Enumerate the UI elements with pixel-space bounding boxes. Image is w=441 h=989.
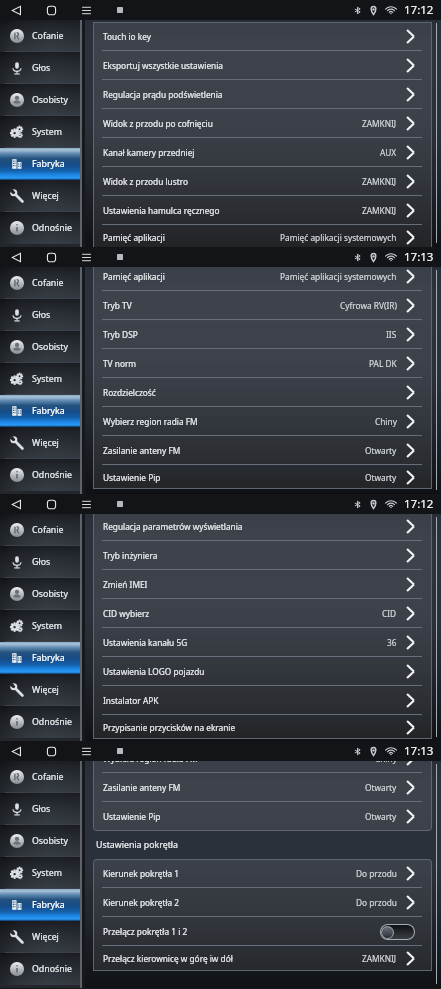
- button[interactable]: Przełącz pokrętła 1 i 2: [93, 917, 432, 946]
- button[interactable]: Back: [4, 494, 28, 514]
- button[interactable]: Pamięć aplikacji: [93, 225, 432, 247]
- button[interactable]: Osobisty: [0, 84, 82, 116]
- button[interactable]: Więcej: [0, 674, 82, 706]
- button[interactable]: Ustawienie Pip: [93, 802, 432, 831]
- button[interactable]: Osobisty: [0, 825, 82, 857]
- staticText: Do przodu: [356, 897, 397, 908]
- staticText: AUX: [380, 147, 397, 158]
- button[interactable]: Cofanie: [0, 514, 82, 546]
- button[interactable]: Zmień IMEI: [93, 570, 432, 599]
- button[interactable]: Rozdzielczość: [93, 378, 432, 407]
- button[interactable]: Widok z przodu po cofnięciu: [93, 109, 432, 138]
- button[interactable]: Więcej: [0, 180, 82, 212]
- button[interactable]: Fabryka: [0, 642, 82, 674]
- staticText: Osobisty: [32, 835, 68, 847]
- button[interactable]: Odnośnie: [0, 706, 82, 738]
- staticText: Wybierz region radia FM: [103, 761, 198, 764]
- button[interactable]: TV norm: [93, 349, 432, 378]
- button[interactable]: Cofanie: [0, 267, 82, 299]
- button[interactable]: Home: [39, 0, 63, 20]
- button[interactable]: Home: [39, 247, 63, 267]
- button[interactable]: Menu: [74, 247, 98, 267]
- staticText: CID wybierz: [103, 608, 150, 619]
- staticText: CID: [382, 608, 397, 619]
- button[interactable]: Głos: [0, 546, 82, 578]
- button[interactable]: Regulacja parametrów wyświetlania: [93, 514, 432, 541]
- button[interactable]: Osobisty: [0, 578, 82, 610]
- staticText: Cyfrowa RV(IR): [340, 300, 397, 311]
- button[interactable]: Więcej: [0, 921, 82, 953]
- button[interactable]: System: [0, 610, 82, 642]
- button[interactable]: Widok z przodu lustro: [93, 167, 432, 196]
- button[interactable]: Touch io key: [93, 22, 432, 51]
- button[interactable]: Pamięć aplikacji: [93, 267, 432, 291]
- staticText: ZAMKNIJ: [362, 118, 397, 129]
- button[interactable]: Zasilanie anteny FM: [93, 773, 432, 802]
- button[interactable]: Ustawienie Pip: [93, 465, 432, 489]
- button[interactable]: Fabryka: [0, 148, 82, 180]
- button[interactable]: Tryb inżyniera: [93, 541, 432, 570]
- button[interactable]: Głos: [0, 793, 82, 825]
- staticText: ZAMKNIJ: [362, 953, 397, 964]
- button[interactable]: System: [0, 116, 82, 148]
- button[interactable]: Wybierz region radia FM: [93, 761, 432, 773]
- button[interactable]: Cofanie: [0, 20, 82, 52]
- staticText: Głos: [32, 62, 51, 74]
- button[interactable]: Odnośnie: [0, 953, 82, 985]
- staticText: Cofanie: [32, 30, 64, 42]
- button[interactable]: Regulacja prądu podświetlenia: [93, 80, 432, 109]
- staticText: Fabryka: [32, 405, 65, 417]
- staticText: Widok z przodu lustro: [103, 176, 188, 187]
- button[interactable]: Back: [4, 0, 28, 20]
- staticText: Ustawienie Pip: [103, 811, 161, 822]
- button[interactable]: Menu: [74, 494, 98, 514]
- staticText: Osobisty: [32, 588, 68, 600]
- staticText: Ustawienia hamulca ręcznego: [103, 205, 220, 216]
- button[interactable]: Ustawienia hamulca ręcznego: [93, 196, 432, 225]
- button[interactable]: Back: [4, 741, 28, 761]
- staticText: Zasilanie anteny FM: [103, 782, 181, 793]
- button[interactable]: Back: [4, 247, 28, 267]
- button[interactable]: Odnośnie: [0, 212, 82, 244]
- button[interactable]: System: [0, 857, 82, 889]
- staticText: Wybierz region radia FM: [103, 416, 198, 427]
- button[interactable]: Tryb TV: [93, 291, 432, 320]
- staticText: System: [32, 620, 62, 632]
- staticText: Przypisanie przycisków na ekranie: [103, 722, 236, 733]
- button[interactable]: Eksportuj wszystkie ustawienia: [93, 51, 432, 80]
- button[interactable]: Home: [39, 494, 63, 514]
- button[interactable]: System: [0, 363, 82, 395]
- staticText: Fabryka: [32, 899, 65, 911]
- button[interactable]: Osobisty: [0, 331, 82, 363]
- button[interactable]: Odnośnie: [0, 459, 82, 491]
- button[interactable]: Home: [39, 741, 63, 761]
- button[interactable]: Kierunek pokrętła 1: [93, 859, 432, 888]
- staticText: Więcej: [32, 684, 59, 696]
- button[interactable]: Menu: [74, 741, 98, 761]
- button[interactable]: Przełącz kierownicę w górę iw dół: [93, 946, 432, 971]
- staticText: Rozdzielczość: [103, 387, 156, 398]
- staticText: Chiny: [375, 761, 397, 764]
- staticText: 17:13: [404, 249, 434, 265]
- button[interactable]: Ustawienia LOGO pojazdu: [93, 657, 432, 686]
- button[interactable]: Więcej: [0, 427, 82, 459]
- button[interactable]: Ustawienia kanału 5G: [93, 628, 432, 657]
- button[interactable]: Fabryka: [0, 889, 82, 921]
- button[interactable]: Zasilanie anteny FM: [93, 436, 432, 465]
- button[interactable]: Cofanie: [0, 761, 82, 793]
- staticText: Pamięć aplikacji systemowych: [280, 232, 397, 243]
- button[interactable]: Menu: [74, 0, 98, 20]
- button[interactable]: Kanał kamery przedniej: [93, 138, 432, 167]
- button[interactable]: CID wybierz: [93, 599, 432, 628]
- staticText: Głos: [32, 803, 51, 815]
- button[interactable]: Instalator APK: [93, 686, 432, 715]
- button[interactable]: Wybierz region radia FM: [93, 407, 432, 436]
- button[interactable]: Tryb DSP: [93, 320, 432, 349]
- button[interactable]: Przypisanie przycisków na ekranie: [93, 715, 432, 739]
- button[interactable]: Fabryka: [0, 395, 82, 427]
- staticText: Zmień IMEI: [103, 579, 148, 590]
- staticText: Otwarty: [365, 811, 397, 822]
- button[interactable]: Głos: [0, 299, 82, 331]
- button[interactable]: Kierunek pokrętła 2: [93, 888, 432, 917]
- button[interactable]: Głos: [0, 52, 82, 84]
